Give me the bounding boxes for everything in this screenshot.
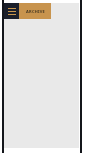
button[interactable]: Open navigation menu (4, 3, 19, 19)
button[interactable]: ARCHIVE (19, 3, 51, 19)
staticText: ARCHIVE (26, 9, 45, 14)
